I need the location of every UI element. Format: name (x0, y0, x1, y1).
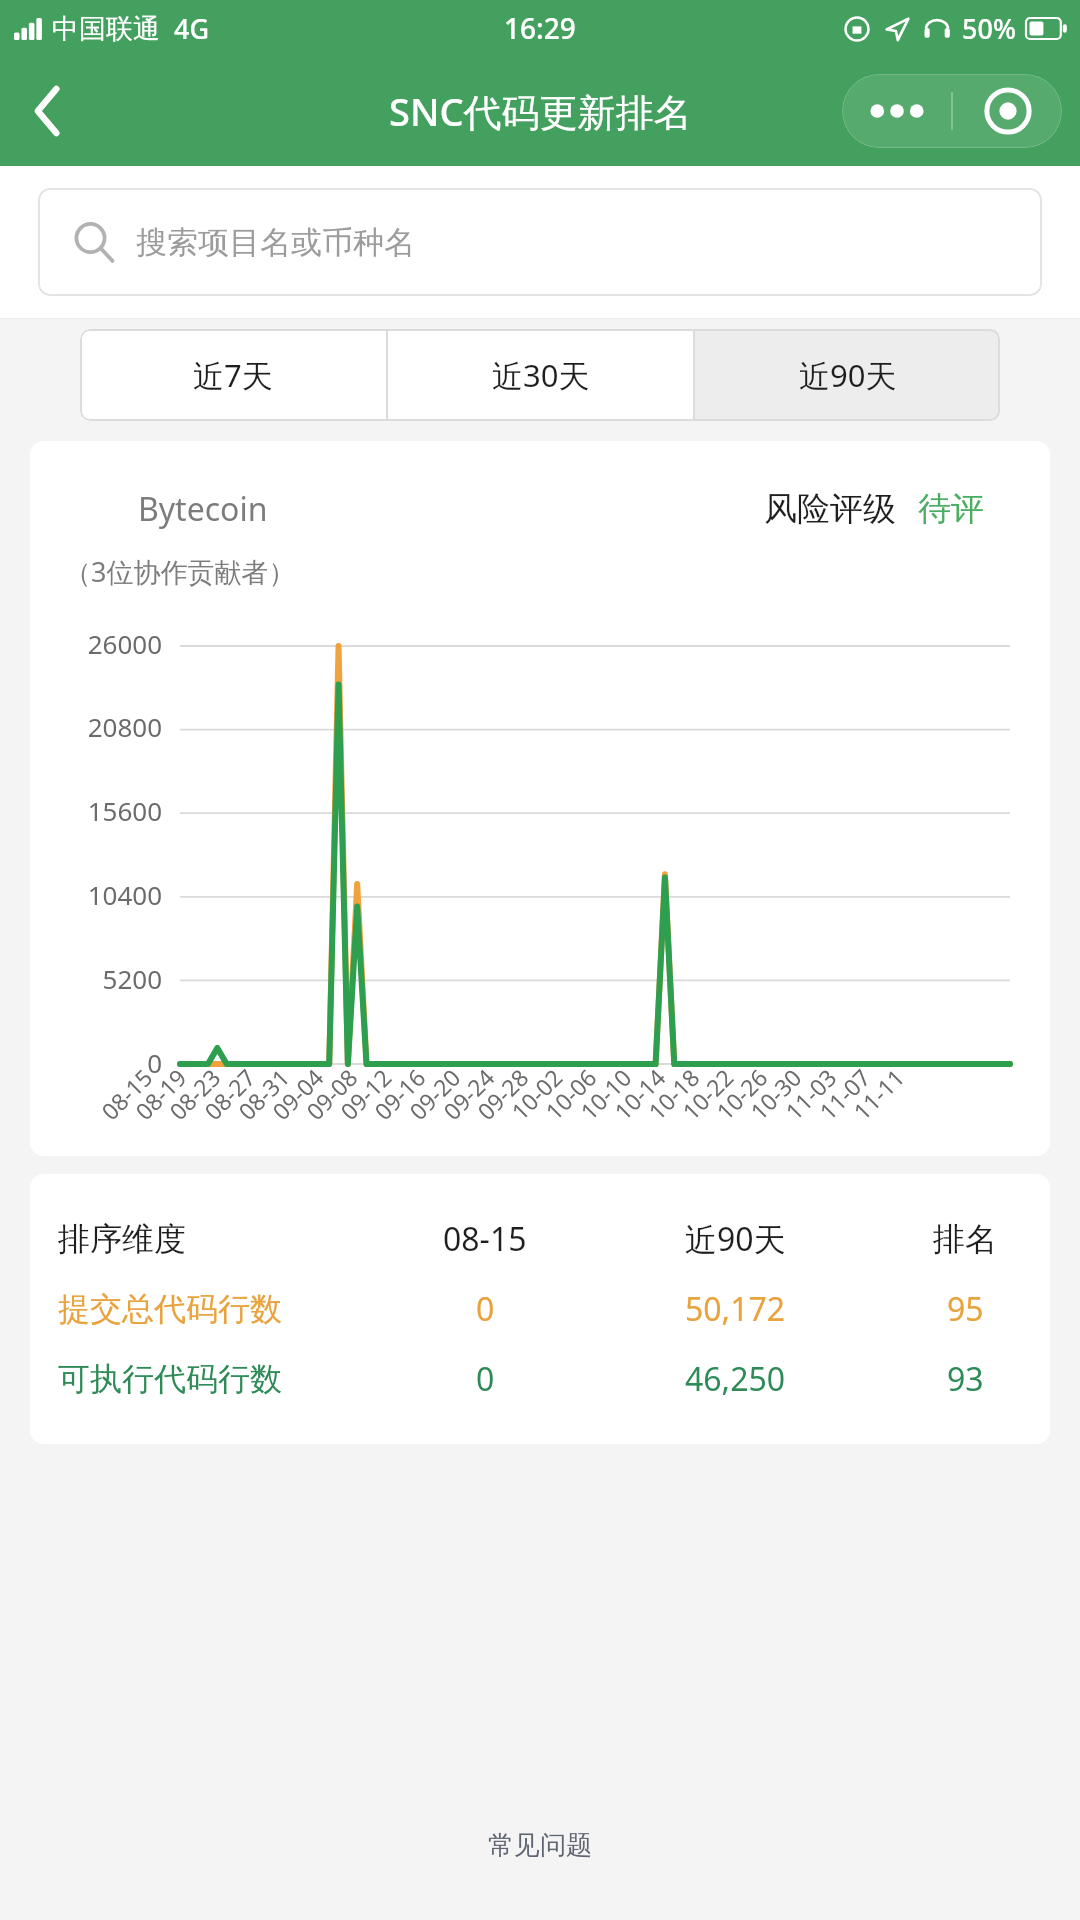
button[interactable]: 常见问题 (0, 1770, 1080, 1920)
staticText: 93 (947, 1357, 984, 1401)
staticText: 搜索项目名或币种名 (136, 223, 415, 262)
staticText: 09-28 (470, 1061, 535, 1126)
staticText: 10-30 (743, 1061, 808, 1126)
staticText: 10-14 (607, 1061, 672, 1126)
staticText: 10-22 (675, 1061, 740, 1126)
staticText: 11-03 (778, 1061, 843, 1126)
staticText: 09-20 (402, 1061, 467, 1126)
staticText: 风险评级 (764, 488, 896, 530)
staticText: 11-11 (846, 1061, 911, 1126)
button[interactable]: 排序维度 (30, 1204, 1050, 1274)
button[interactable]: Back (8, 71, 88, 151)
staticText: 26000 (34, 626, 162, 660)
staticText: 11-07 (812, 1061, 877, 1126)
staticText: 09-16 (367, 1061, 432, 1126)
staticText: Bytecoin (138, 487, 268, 531)
button[interactable]: 可执行代码行数 (30, 1344, 1050, 1414)
button[interactable]: 提交总代码行数 (30, 1274, 1050, 1344)
staticText: 待评 (918, 488, 984, 530)
button[interactable]: 近90天 (695, 329, 1000, 421)
staticText: 排名 (933, 1219, 997, 1259)
staticText: 46,250 (685, 1357, 786, 1401)
staticText: 10-26 (709, 1061, 774, 1126)
staticText: 09-08 (299, 1061, 364, 1126)
staticText: 常见问题 (488, 1829, 592, 1862)
staticText: 10400 (34, 877, 162, 912)
staticText: 0 (34, 1045, 162, 1080)
staticText: 09-04 (265, 1061, 330, 1126)
staticText: 09-12 (333, 1061, 398, 1126)
button[interactable]: 近7天 (80, 329, 386, 421)
staticText: 08-31 (231, 1061, 296, 1126)
staticText: 0 (476, 1357, 495, 1401)
staticText: 08-19 (128, 1061, 193, 1126)
staticText: 09-24 (436, 1061, 501, 1126)
button[interactable]: 搜索项目名或币种名 (38, 188, 1042, 296)
staticText: 08-27 (197, 1061, 262, 1126)
staticText: 排序维度 (58, 1219, 186, 1259)
staticText: 10-02 (504, 1061, 569, 1126)
staticText: 15600 (34, 793, 162, 828)
staticText: 近90天 (799, 354, 897, 396)
staticText: 08-15 (94, 1061, 159, 1126)
staticText: 95 (947, 1287, 984, 1331)
staticText: 4G (174, 10, 210, 47)
staticText: 50,172 (685, 1287, 786, 1331)
staticText: 0 (476, 1287, 495, 1331)
staticText: 近90天 (685, 1217, 786, 1261)
staticText: 近7天 (193, 354, 273, 396)
staticText: 近30天 (492, 354, 590, 396)
staticText: 可执行代码行数 (58, 1359, 282, 1399)
staticText: 5200 (34, 961, 162, 996)
staticText: 10-10 (573, 1061, 638, 1126)
staticText: 50% (962, 10, 1016, 47)
staticText: 08-15 (443, 1217, 527, 1261)
staticText: 08-23 (162, 1061, 227, 1126)
staticText: 16:29 (504, 9, 576, 47)
staticText: 20800 (34, 709, 162, 744)
staticText: SNC代码更新排名 (389, 85, 692, 137)
staticText: 10-18 (641, 1061, 706, 1126)
staticText: 提交总代码行数 (58, 1289, 282, 1329)
staticText: 中国联通 (52, 12, 160, 46)
staticText: 10-06 (538, 1061, 603, 1126)
button[interactable]: Mini program menu (842, 74, 1062, 148)
button[interactable]: 近30天 (388, 329, 693, 421)
staticText: （3位协作贡献者） (64, 553, 296, 590)
